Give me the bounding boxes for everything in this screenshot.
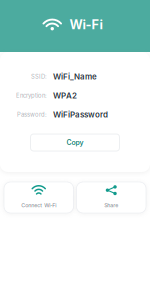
- button[interactable]: Connect Wi-Fi: [4, 182, 73, 213]
- staticText: WPA2: [53, 91, 77, 100]
- staticText: Password:: [17, 111, 47, 118]
- staticText: SSID:: [31, 73, 47, 80]
- staticText: Connect Wi-Fi: [21, 202, 56, 208]
- button[interactable]: Copy: [30, 134, 119, 151]
- staticText: Wi-Fi: [69, 17, 102, 32]
- button[interactable]: Share: [76, 182, 146, 213]
- staticText: Share: [104, 202, 118, 208]
- staticText: WiFiPassword: [53, 110, 108, 119]
- staticText: WiFi_Name: [53, 72, 97, 81]
- staticText: Encryption:: [16, 92, 47, 99]
- staticText: Copy: [66, 138, 83, 147]
